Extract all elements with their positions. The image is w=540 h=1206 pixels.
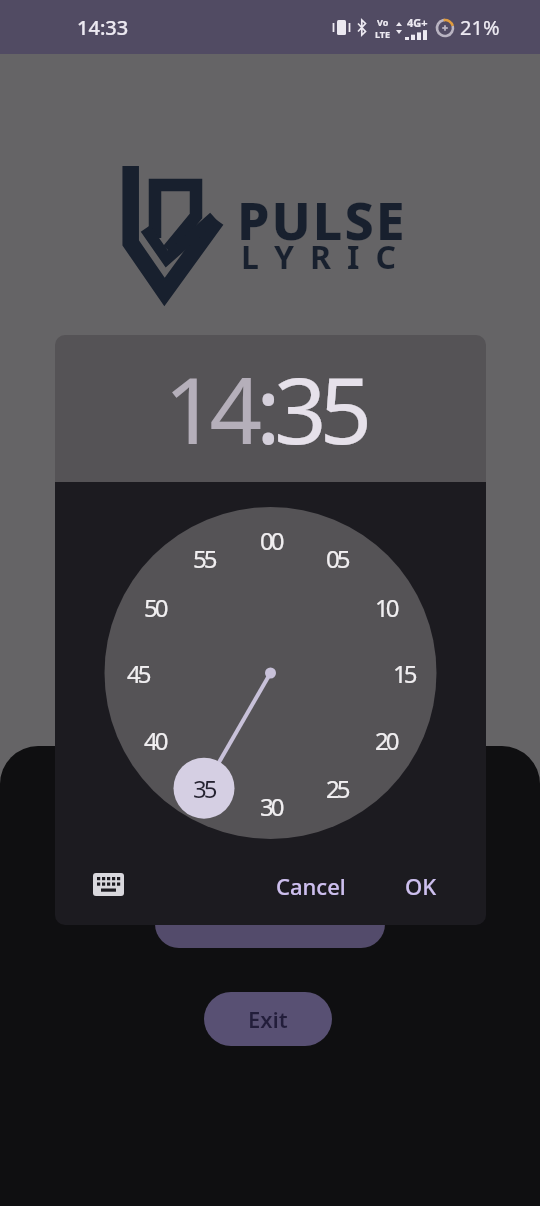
- staticText: Cancel: [276, 871, 346, 901]
- staticText: 30: [260, 790, 282, 823]
- staticText: :: [256, 346, 274, 471]
- staticText: 25: [326, 772, 348, 805]
- staticText: 20: [375, 724, 397, 757]
- staticText: 21%: [460, 14, 500, 41]
- staticText: 05: [326, 542, 348, 575]
- staticText: 15: [393, 657, 415, 690]
- staticText: 55: [193, 542, 215, 575]
- button[interactable]: Exit: [204, 992, 332, 1046]
- staticText: 40: [144, 724, 166, 757]
- staticText: 4G+: [407, 15, 428, 30]
- staticText: 10: [375, 591, 397, 624]
- button[interactable]: Cancel: [251, 866, 371, 906]
- staticText: PULSE: [237, 184, 407, 255]
- button[interactable]: [155, 900, 385, 948]
- staticText: 14:33: [77, 14, 129, 41]
- staticText: OK: [405, 871, 437, 901]
- staticText: LTE: [375, 28, 391, 40]
- staticText: 35: [274, 346, 366, 471]
- button[interactable]: [93, 873, 124, 896]
- staticText: 14: [164, 346, 256, 471]
- staticText: 50: [144, 591, 166, 624]
- staticText: Exit: [248, 1004, 288, 1034]
- staticText: 45: [127, 657, 149, 690]
- staticText: 00: [260, 524, 282, 557]
- staticText: LYRIC: [241, 235, 412, 279]
- button[interactable]: OK: [381, 866, 461, 906]
- staticText: 35: [193, 772, 215, 805]
- staticText: Vo: [377, 16, 389, 28]
